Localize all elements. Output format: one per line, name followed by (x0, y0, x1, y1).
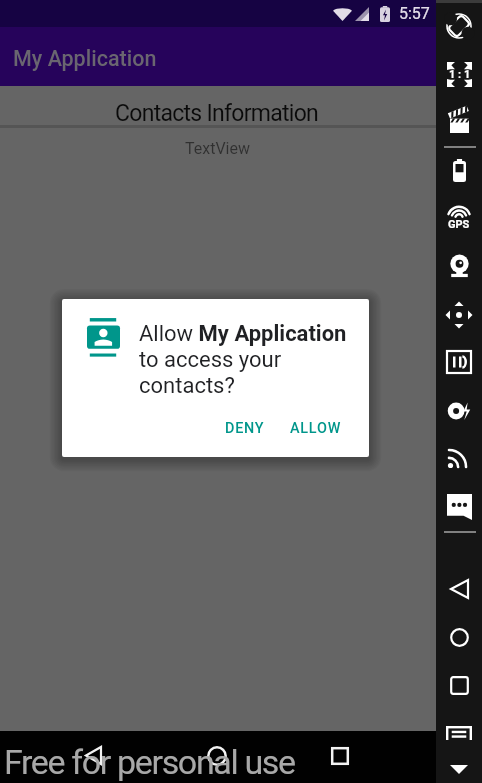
button[interactable]: More options (450, 765, 468, 774)
staticText: ALLOW (290, 420, 342, 437)
button[interactable]: Home (201, 740, 232, 771)
button[interactable]: Zoom 1 to 1 (436, 51, 482, 97)
staticText: GPS (448, 218, 470, 231)
button[interactable]: Cellular (436, 434, 482, 480)
button[interactable]: Battery (436, 147, 482, 193)
button[interactable]: Device ID (436, 339, 482, 385)
button[interactable]: Contacts Information (0, 86, 436, 125)
button[interactable]: Back (436, 566, 482, 612)
button[interactable]: Camera (436, 243, 482, 289)
staticText: TextView (185, 139, 251, 158)
button[interactable]: DENY (217, 415, 273, 442)
button[interactable]: Virtual sensors (436, 292, 482, 338)
staticText: 5:57 (399, 4, 430, 23)
staticText: Contacts Information (115, 100, 319, 127)
button[interactable]: Messages (436, 484, 482, 530)
button[interactable]: Record screen (436, 98, 482, 144)
button[interactable]: GPS location (436, 195, 482, 241)
button[interactable]: My Application (0, 27, 436, 86)
button[interactable]: Home (436, 614, 482, 660)
button[interactable]: Keyboard (436, 710, 482, 756)
button[interactable]: Rotate (436, 3, 482, 49)
button[interactable]: ALLOW (282, 415, 350, 442)
button[interactable]: Snapshot (436, 388, 482, 434)
staticText: 1 : 1 (449, 68, 471, 81)
button[interactable]: Overview (436, 662, 482, 708)
staticText: My Application (13, 46, 157, 71)
staticText: DENY (225, 420, 265, 437)
staticText: Free for personal use (4, 742, 295, 782)
staticText: Allow My Application to access your cont… (139, 321, 347, 399)
button[interactable]: Back (78, 740, 109, 771)
button[interactable]: Recent apps (324, 740, 355, 771)
